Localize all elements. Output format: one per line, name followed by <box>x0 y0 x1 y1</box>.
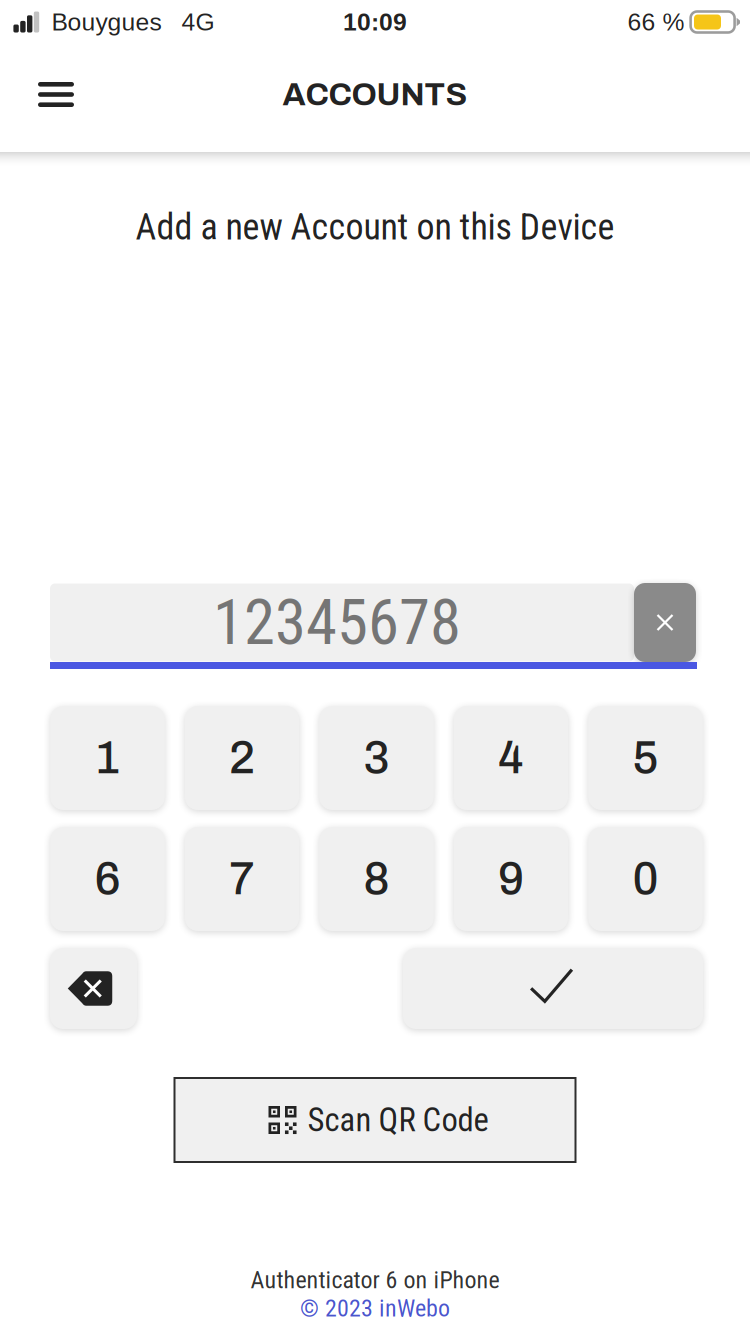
button[interactable]: 5 <box>588 706 703 810</box>
button[interactable]: Menu <box>20 58 92 130</box>
button[interactable]: 6 <box>50 827 165 931</box>
staticText: Authenticator 6 on iPhone <box>250 1266 499 1294</box>
button[interactable]: Validate <box>403 948 703 1029</box>
button[interactable]: Delete <box>50 948 137 1029</box>
staticText: 0 <box>632 854 658 904</box>
staticText: 4G <box>182 8 215 36</box>
button[interactable]: 1 <box>50 706 165 810</box>
staticText: 10:09 <box>343 8 407 36</box>
staticText: 66 % <box>628 8 685 36</box>
staticText: 9 <box>498 854 524 904</box>
button[interactable]: 8 <box>319 827 434 931</box>
staticText: 4 <box>498 733 524 783</box>
staticText: 8 <box>363 854 389 904</box>
staticText: Scan QR Code <box>307 1101 488 1139</box>
button[interactable]: 4 <box>454 706 568 810</box>
staticText: © 2023 inWebo <box>300 1294 450 1322</box>
staticText: 2 <box>229 733 255 783</box>
staticText: 6 <box>94 854 120 904</box>
staticText: Add a new Account on this Device <box>135 206 614 248</box>
button[interactable]: Clear <box>634 583 696 662</box>
button[interactable]: 9 <box>454 827 568 931</box>
button[interactable]: Scan QR Code <box>174 1078 575 1162</box>
staticText: 7 <box>229 854 255 904</box>
staticText: 12345678 <box>213 586 461 659</box>
staticText: 1 <box>95 733 120 783</box>
staticText: 5 <box>632 733 658 783</box>
staticText: ACCOUNTS <box>282 77 467 112</box>
button[interactable]: 3 <box>319 706 434 810</box>
staticText: 3 <box>363 733 389 783</box>
button[interactable]: 7 <box>185 827 299 931</box>
button[interactable]: 2 <box>185 706 299 810</box>
staticText: Bouygues <box>52 8 162 36</box>
button[interactable]: 0 <box>588 827 703 931</box>
